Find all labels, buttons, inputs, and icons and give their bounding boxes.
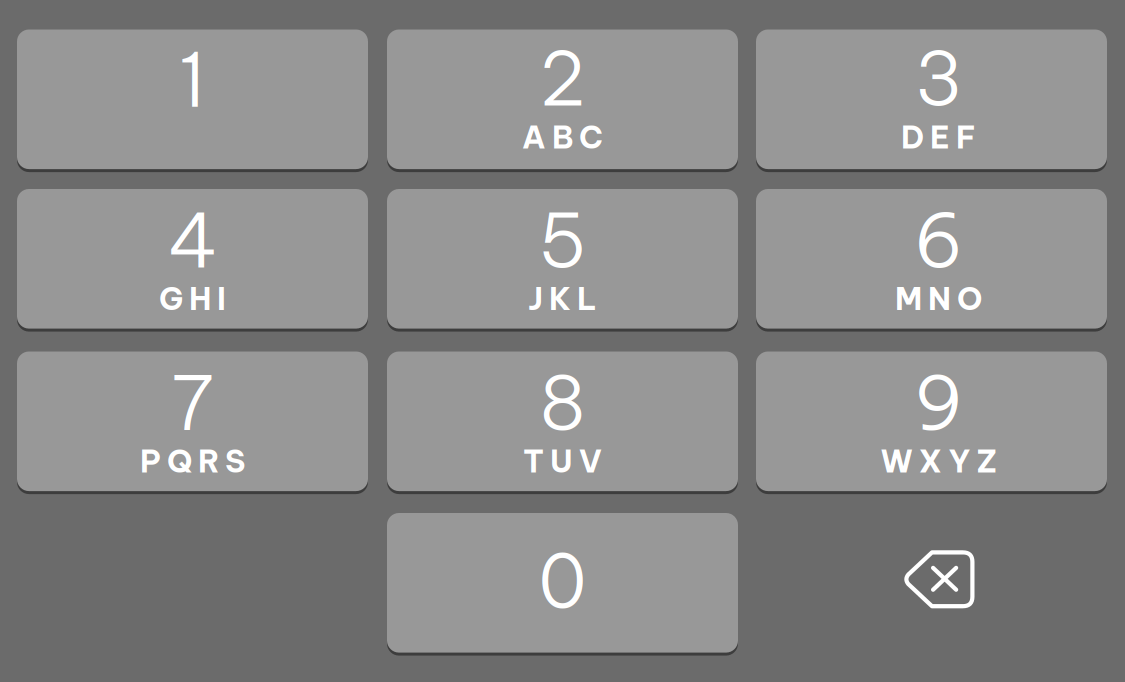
- staticText: 1: [179, 32, 206, 126]
- button[interactable]: 3: [756, 28, 1107, 171]
- staticText: PQRS: [140, 442, 245, 481]
- staticText: 4: [167, 193, 217, 287]
- staticText: DEF: [901, 118, 976, 157]
- button[interactable]: 7: [17, 350, 368, 493]
- button[interactable]: 8: [387, 350, 738, 493]
- button[interactable]: 9: [756, 350, 1107, 493]
- staticText: 2: [539, 31, 586, 125]
- button[interactable]: 2: [387, 28, 738, 171]
- staticText: 8: [539, 355, 586, 450]
- button[interactable]: 4: [17, 187, 368, 330]
- staticText: 3: [914, 31, 962, 125]
- button[interactable]: 5: [387, 187, 738, 330]
- staticText: TUV: [523, 442, 602, 481]
- staticText: ABC: [522, 118, 603, 157]
- staticText: GHI: [159, 279, 226, 318]
- staticText: 9: [913, 355, 963, 450]
- staticText: 5: [538, 193, 587, 287]
- staticText: WXYZ: [880, 442, 996, 481]
- button[interactable]: 1: [17, 28, 368, 171]
- button[interactable]: Delete: [756, 511, 1107, 651]
- staticText: MNO: [895, 279, 982, 318]
- staticText: JKL: [528, 279, 597, 318]
- button[interactable]: 0: [387, 511, 738, 654]
- staticText: 0: [538, 533, 587, 628]
- staticText: 7: [170, 355, 214, 450]
- staticText: 6: [913, 193, 963, 287]
- button[interactable]: 6: [756, 187, 1107, 330]
